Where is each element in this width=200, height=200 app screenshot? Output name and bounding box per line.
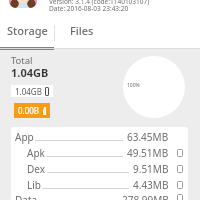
button[interactable]: Data bbox=[11, 193, 188, 200]
staticText: Storage bbox=[7, 23, 48, 38]
staticText: 1.04GB bbox=[11, 65, 49, 80]
staticText: 1.04GB bbox=[15, 86, 42, 97]
staticText: 0.00B bbox=[18, 105, 40, 116]
staticText: 278.99MB bbox=[122, 193, 169, 200]
staticText: 9.51MB bbox=[133, 162, 169, 176]
staticText: Total bbox=[11, 54, 33, 67]
staticText: Dex bbox=[27, 162, 46, 176]
staticText: Date: 2016-08-03 23:43:20 bbox=[49, 4, 129, 13]
button[interactable]: App bbox=[11, 129, 188, 145]
staticText: Data bbox=[15, 193, 38, 200]
button[interactable]: Dex bbox=[11, 161, 188, 177]
button[interactable]: Storage bbox=[0, 14, 54, 46]
staticText: Lib bbox=[27, 178, 41, 192]
staticText: 49.51MB bbox=[127, 146, 169, 160]
button[interactable]: 0.00B bbox=[18, 103, 46, 118]
button[interactable]: Lib bbox=[11, 177, 188, 193]
button[interactable]: Profile avatar bbox=[9, 0, 37, 8]
staticText: 100% bbox=[127, 82, 140, 89]
staticText: Apk bbox=[27, 146, 45, 160]
staticText: 63.45MB bbox=[127, 130, 169, 144]
button[interactable]: 1.04GB bbox=[15, 85, 49, 97]
staticText: Version: 3.1.4 (code:1140103107) bbox=[49, 0, 150, 6]
staticText: App bbox=[15, 130, 34, 144]
staticText: Files bbox=[70, 23, 94, 38]
button[interactable]: Files bbox=[55, 14, 109, 46]
button[interactable]: Apk bbox=[11, 145, 188, 161]
staticText: 4.43MB bbox=[133, 178, 169, 192]
